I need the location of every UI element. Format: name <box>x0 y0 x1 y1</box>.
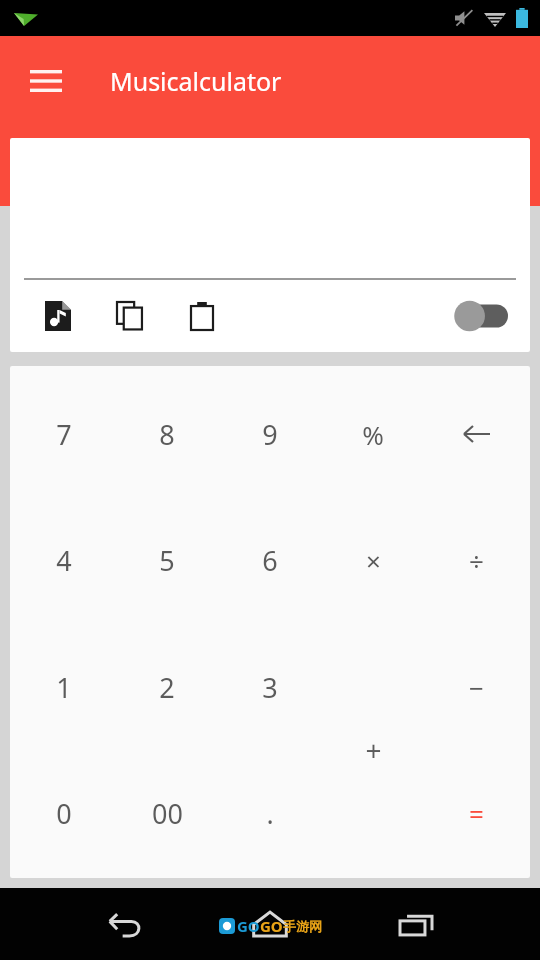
button[interactable]: ÷ <box>428 512 524 608</box>
staticText: Musicalculator <box>110 64 282 98</box>
staticText: − <box>469 670 484 705</box>
staticText: 3 <box>262 669 278 706</box>
button[interactable]: × <box>325 512 421 608</box>
staticText: 5 <box>159 542 175 579</box>
button[interactable]: 9 <box>222 386 318 482</box>
staticText: 手游网 <box>283 918 322 934</box>
button[interactable]: % <box>325 386 421 482</box>
staticText: 7 <box>56 416 72 453</box>
button[interactable]: 1 <box>16 639 112 735</box>
staticText: % <box>362 417 384 452</box>
staticText: 00 <box>152 795 183 832</box>
staticText: 0 <box>56 795 72 832</box>
button[interactable]: 8 <box>119 386 215 482</box>
button[interactable]: Back <box>92 892 156 956</box>
button[interactable]: 7 <box>16 386 112 482</box>
staticText: ÷ <box>469 543 484 578</box>
button[interactable]: 2 <box>119 639 215 735</box>
button[interactable]: 0 <box>16 765 112 861</box>
button[interactable]: Play as music <box>34 292 82 340</box>
button[interactable]: Backspace <box>428 386 524 482</box>
staticText: 2 <box>159 669 175 706</box>
button[interactable]: = <box>428 765 524 861</box>
staticText: 1 <box>56 669 72 706</box>
button[interactable]: Home <box>238 892 302 956</box>
staticText: + <box>365 731 382 769</box>
button[interactable]: 4 <box>16 512 112 608</box>
button[interactable]: Copy <box>106 292 154 340</box>
button[interactable]: 6 <box>222 512 318 608</box>
staticText: GO <box>237 916 260 936</box>
button[interactable]: Paste <box>178 292 226 340</box>
button[interactable]: 3 <box>222 639 318 735</box>
button[interactable]: − <box>428 639 524 735</box>
staticText: 6 <box>262 542 278 579</box>
button[interactable]: Toggle sound <box>444 292 516 340</box>
staticText: 9 <box>262 416 278 453</box>
button[interactable]: 5 <box>119 512 215 608</box>
staticText: × <box>366 543 381 578</box>
staticText: = <box>469 796 484 831</box>
staticText: GO <box>260 916 283 936</box>
staticText: 4 <box>56 542 72 579</box>
button[interactable]: Open navigation menu <box>20 55 72 107</box>
staticText: 8 <box>159 416 175 453</box>
staticText: . <box>266 795 274 832</box>
button[interactable]: Recent apps <box>384 892 448 956</box>
button[interactable]: 00 <box>119 765 215 861</box>
button[interactable]: + <box>325 702 421 798</box>
button[interactable]: . <box>222 765 318 861</box>
